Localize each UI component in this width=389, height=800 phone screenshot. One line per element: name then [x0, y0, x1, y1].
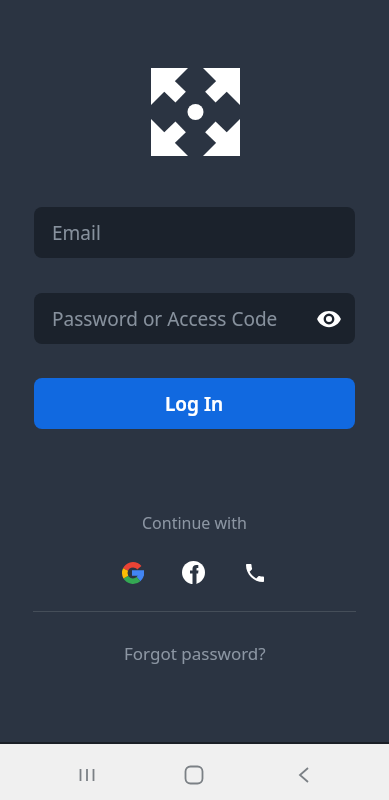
button[interactable]: Forgot password?: [124, 642, 266, 665]
button[interactable]: [293, 764, 315, 786]
button[interactable]: Log In: [34, 378, 355, 429]
button[interactable]: [243, 561, 267, 585]
staticText: Email: [52, 220, 101, 246]
button[interactable]: [183, 764, 205, 786]
button[interactable]: [76, 764, 98, 786]
button[interactable]: Password or Access Code: [34, 293, 355, 344]
staticText: Continue with: [142, 512, 247, 534]
button[interactable]: [316, 306, 342, 332]
staticText: Password or Access Code: [52, 306, 278, 332]
staticText: Log In: [165, 391, 224, 417]
button[interactable]: [122, 562, 144, 584]
button[interactable]: [182, 561, 205, 584]
button[interactable]: Email: [34, 207, 355, 258]
